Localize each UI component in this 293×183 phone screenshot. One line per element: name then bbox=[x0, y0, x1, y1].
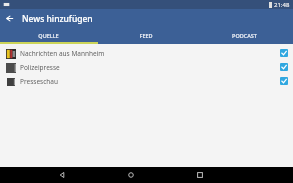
button[interactable]: Auswahl bbox=[280, 77, 288, 85]
button[interactable]: PODCAST bbox=[195, 28, 293, 42]
button[interactable]: Presseschau bbox=[0, 74, 293, 88]
staticText: Presseschau bbox=[20, 77, 280, 86]
button[interactable]: Auswahl bbox=[280, 63, 288, 71]
button[interactable]: Zurück bbox=[0, 9, 19, 28]
staticText: Polizeipresse bbox=[20, 63, 280, 72]
button[interactable]: Startseite bbox=[123, 167, 139, 183]
button[interactable]: Nachrichten aus Mannheim bbox=[0, 46, 293, 60]
button[interactable]: Übersicht bbox=[192, 167, 208, 183]
button[interactable]: QUELLE bbox=[0, 28, 97, 42]
button[interactable]: Auswahl bbox=[280, 49, 288, 57]
staticText: Nachrichten aus Mannheim bbox=[20, 49, 280, 58]
button[interactable]: Polizeipresse bbox=[0, 60, 293, 74]
button[interactable]: FEED bbox=[97, 28, 195, 42]
staticText: PODCAST bbox=[232, 32, 257, 39]
staticText: QUELLE bbox=[38, 32, 59, 39]
button[interactable]: Zurück bbox=[54, 167, 70, 183]
staticText: 21:48 bbox=[274, 1, 290, 9]
staticText: FEED bbox=[139, 32, 153, 39]
staticText: News hinzufügen bbox=[22, 13, 93, 25]
